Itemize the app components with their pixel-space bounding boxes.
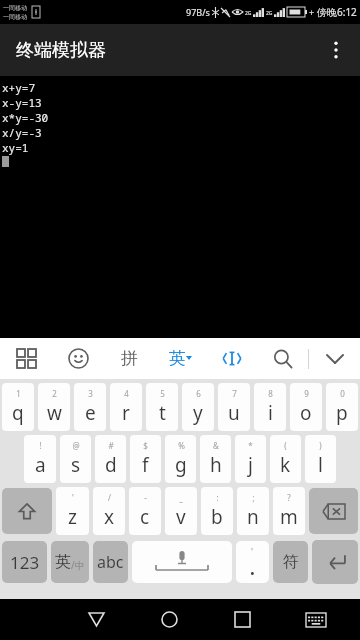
staticText: w [47, 400, 62, 426]
staticText: x+y=7 [2, 80, 35, 95]
button[interactable]: 拼 [104, 338, 155, 379]
staticText: ? [287, 492, 291, 503]
staticText: 4 [124, 388, 129, 399]
staticText: 6 [196, 388, 201, 399]
staticText: 2G [245, 10, 252, 17]
staticText: x-y=13 [2, 95, 42, 110]
staticText: e [85, 400, 96, 426]
button[interactable]: Space [132, 541, 232, 583]
staticText: 97B/s [186, 6, 210, 18]
staticText: d [105, 452, 117, 478]
staticText: . [250, 557, 255, 580]
button[interactable]: $ [130, 435, 161, 483]
staticText: @ [72, 440, 80, 451]
staticText: m [280, 504, 298, 530]
button[interactable]: ' [236, 541, 269, 583]
button[interactable]: ' [56, 487, 89, 535]
button[interactable]: 3 [74, 383, 106, 431]
button[interactable]: 0 [326, 383, 358, 431]
button[interactable]: abc [93, 541, 128, 583]
button[interactable]: Back [60, 599, 133, 640]
button[interactable]: * [235, 435, 266, 483]
button[interactable]: ; [237, 487, 269, 535]
staticText: p [336, 400, 348, 426]
button[interactable]: ! [24, 435, 56, 483]
button[interactable]: # [95, 435, 126, 483]
staticText: xy=1 [2, 140, 29, 155]
staticText: 傍晚6:12 [317, 5, 357, 19]
button[interactable]: 6 [182, 383, 214, 431]
button[interactable]: Hide keyboard [279, 599, 352, 640]
staticText: t [159, 400, 166, 426]
staticText: / [108, 492, 111, 503]
button[interactable]: _ [165, 487, 197, 535]
button[interactable]: : [201, 487, 233, 535]
button[interactable]: % [165, 435, 196, 483]
button[interactable]: More options [312, 26, 360, 74]
button[interactable]: 2 [38, 383, 70, 431]
button[interactable]: Search [257, 338, 308, 379]
staticText: i [268, 400, 273, 426]
button[interactable]: ? [273, 487, 305, 535]
button[interactable]: 1 [2, 383, 34, 431]
staticText: 一同移动 [3, 4, 27, 12]
button[interactable]: @ [60, 435, 91, 483]
staticText: 2G [266, 10, 273, 17]
button[interactable]: Recents [206, 599, 279, 640]
staticText: g [175, 452, 187, 478]
staticText: ! [39, 440, 42, 451]
button[interactable]: 9 [290, 383, 322, 431]
staticText: /中 [71, 558, 85, 572]
staticText: 英 [55, 552, 71, 572]
button[interactable]: 8 [254, 383, 286, 431]
staticText: u [228, 400, 240, 426]
staticText: h [210, 452, 222, 478]
staticText: f [142, 452, 149, 478]
staticText: s [71, 452, 81, 478]
staticText: abc [97, 551, 124, 573]
button[interactable]: / [93, 487, 125, 535]
button[interactable]: x+y=7 [0, 76, 360, 338]
button[interactable]: 符 [273, 541, 308, 583]
staticText: ( [284, 440, 287, 451]
button[interactable]: 英 [155, 338, 206, 379]
button[interactable]: - [129, 487, 161, 535]
staticText: a [35, 452, 46, 478]
staticText: j [248, 452, 253, 478]
staticText: n [247, 504, 259, 530]
button[interactable]: ( [270, 435, 301, 483]
staticText: c [140, 504, 150, 530]
staticText: k [280, 452, 291, 478]
button[interactable]: ) [305, 435, 336, 483]
button[interactable]: Emoji [52, 338, 104, 379]
staticText: 123 [10, 551, 40, 574]
staticText: 终端模拟器 [16, 39, 106, 62]
staticText: _ [179, 492, 183, 503]
button[interactable]: Shift [2, 488, 52, 534]
staticText: 拼 [121, 348, 138, 369]
button[interactable]: 4 [110, 383, 142, 431]
staticText: # [108, 440, 114, 451]
staticText: v [176, 504, 186, 530]
staticText: 5 [160, 388, 165, 399]
staticText: 符 [283, 552, 299, 572]
staticText: : [216, 492, 219, 503]
button[interactable]: 7 [218, 383, 250, 431]
button[interactable]: Hide keyboard [309, 338, 360, 379]
staticText: 1 [16, 388, 21, 399]
button[interactable]: Enter [312, 540, 358, 584]
button[interactable]: Keyboard layouts [0, 338, 52, 379]
staticText: ' [72, 492, 74, 503]
button[interactable]: & [200, 435, 231, 483]
staticText: 一同移动 [3, 13, 27, 21]
button[interactable]: 123 [2, 541, 47, 583]
button[interactable]: Home [133, 599, 206, 640]
staticText: l [318, 452, 323, 478]
staticText: & [213, 440, 219, 451]
button[interactable]: Move cursor [206, 338, 257, 379]
button[interactable]: 5 [146, 383, 178, 431]
staticText: 2 [52, 388, 57, 399]
button[interactable]: 英 [51, 541, 89, 583]
button[interactable]: Backspace [309, 488, 358, 534]
staticText: 3 [88, 388, 93, 399]
